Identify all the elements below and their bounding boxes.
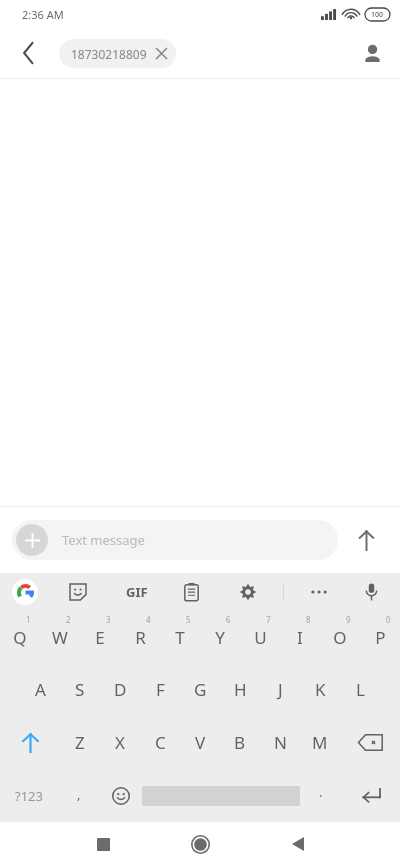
staticText: W xyxy=(52,626,68,649)
button[interactable]: Contact details xyxy=(352,33,392,73)
button[interactable]: A xyxy=(20,663,60,716)
button[interactable]: Home xyxy=(134,822,267,866)
staticText: 6 xyxy=(226,614,231,625)
staticText: 18730218809 xyxy=(71,46,147,62)
staticText: G xyxy=(194,678,207,701)
staticText: N xyxy=(274,731,287,754)
button[interactable]: O xyxy=(320,611,360,663)
staticText: U xyxy=(254,626,267,649)
staticText: D xyxy=(114,678,127,701)
button[interactable]: Clipboard xyxy=(176,577,206,607)
staticText: M xyxy=(312,731,328,754)
button[interactable]: L xyxy=(340,663,380,716)
button[interactable]: S xyxy=(60,663,100,716)
button[interactable]: M xyxy=(300,716,340,769)
staticText: C xyxy=(155,731,166,754)
staticText: 2:36 AM xyxy=(22,7,64,22)
button[interactable]: C xyxy=(140,716,180,769)
staticText: X xyxy=(115,731,125,754)
staticText: K xyxy=(315,678,326,701)
staticText: V xyxy=(195,731,206,754)
button[interactable]: J xyxy=(260,663,300,716)
button[interactable] xyxy=(142,769,300,822)
staticText: 8 xyxy=(306,614,311,625)
staticText: Y xyxy=(215,626,225,649)
staticText: · xyxy=(319,787,323,805)
button[interactable]: Recent apps xyxy=(0,822,134,866)
staticText: I xyxy=(297,626,303,649)
button[interactable]: Emoji xyxy=(100,769,142,822)
button[interactable]: Z xyxy=(60,716,100,769)
button[interactable]: Back xyxy=(267,822,400,866)
staticText: 4 xyxy=(146,614,151,625)
button[interactable]: B xyxy=(220,716,260,769)
staticText: 0 xyxy=(386,614,391,625)
button[interactable]: Q xyxy=(0,611,40,663)
button[interactable]: V xyxy=(180,716,220,769)
staticText: 9 xyxy=(346,614,351,625)
staticText: Q xyxy=(13,626,27,649)
button[interactable]: Y xyxy=(200,611,240,663)
button[interactable]: More options xyxy=(304,577,334,607)
staticText: 1 xyxy=(26,614,31,625)
button[interactable]: Stickers xyxy=(63,577,93,607)
button[interactable]: Enter xyxy=(342,769,400,822)
staticText: Z xyxy=(75,731,85,754)
staticText: Text message xyxy=(62,531,145,549)
button[interactable]: · xyxy=(300,769,342,822)
button[interactable]: D xyxy=(100,663,140,716)
staticText: B xyxy=(234,731,246,754)
button[interactable]: E xyxy=(80,611,120,663)
staticText: 3 xyxy=(106,614,111,625)
button[interactable]: F xyxy=(140,663,180,716)
staticText: ?123 xyxy=(15,787,43,805)
button[interactable]: Settings xyxy=(233,577,263,607)
button[interactable]: R xyxy=(120,611,160,663)
button[interactable]: Send xyxy=(344,518,388,562)
button[interactable]: I xyxy=(280,611,320,663)
staticText: L xyxy=(356,678,365,701)
button[interactable]: U xyxy=(240,611,280,663)
button[interactable]: H xyxy=(220,663,260,716)
button[interactable]: 18730218809 xyxy=(59,39,176,68)
button[interactable]: P xyxy=(360,611,400,663)
button[interactable]: ?123 xyxy=(0,769,58,822)
staticText: 7 xyxy=(266,614,271,625)
button[interactable]: Attach xyxy=(16,524,48,556)
button[interactable]: T xyxy=(160,611,200,663)
button[interactable]: Voice input xyxy=(356,577,386,607)
staticText: , xyxy=(77,785,81,803)
staticText: O xyxy=(333,626,347,649)
staticText: R xyxy=(135,626,146,649)
staticText: F xyxy=(156,678,165,701)
button[interactable]: Attach xyxy=(12,520,338,560)
staticText: S xyxy=(75,678,85,701)
button[interactable]: W xyxy=(40,611,80,663)
staticText: 5 xyxy=(186,614,191,625)
staticText: P xyxy=(375,626,386,649)
button[interactable]: X xyxy=(100,716,140,769)
button[interactable]: Back xyxy=(8,33,48,73)
staticText: 2 xyxy=(66,614,71,625)
button[interactable]: G xyxy=(180,663,220,716)
staticText: H xyxy=(234,678,247,701)
button[interactable]: GIF xyxy=(120,577,154,607)
button[interactable]: Shift xyxy=(0,716,60,769)
staticText: T xyxy=(175,626,185,649)
button[interactable]: Backspace xyxy=(340,716,400,769)
staticText: J xyxy=(278,678,283,701)
button[interactable]: , xyxy=(58,769,100,822)
button[interactable]: Google xyxy=(12,579,38,605)
button[interactable]: K xyxy=(300,663,340,716)
button[interactable]: N xyxy=(260,716,300,769)
staticText: 100 xyxy=(371,10,384,20)
staticText: E xyxy=(95,626,105,649)
staticText: GIF xyxy=(126,583,148,601)
staticText: A xyxy=(35,678,46,701)
